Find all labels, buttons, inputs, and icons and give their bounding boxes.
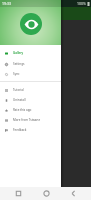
button[interactable]: Tutorial xyxy=(0,85,61,95)
button[interactable]: Uninstall xyxy=(0,95,61,105)
staticText: Rate this app xyxy=(13,108,32,112)
staticText: Uninstall xyxy=(13,98,26,102)
staticText: Sync xyxy=(13,72,20,76)
staticText: Tutorial xyxy=(13,88,24,92)
button[interactable]: More from Tsiwane xyxy=(0,115,61,125)
staticText: Gallery xyxy=(13,51,24,55)
button[interactable]: Gallery xyxy=(0,48,61,58)
staticText: Settings xyxy=(13,62,25,66)
staticText: Feedback xyxy=(13,128,27,132)
button[interactable]: Sync xyxy=(0,69,61,79)
button[interactable]: Home xyxy=(36,187,56,200)
button[interactable]: Settings xyxy=(0,59,61,69)
staticText: 19:33 xyxy=(2,1,11,6)
button[interactable]: Back xyxy=(63,187,83,200)
button[interactable]: Rate this app xyxy=(0,105,61,115)
button[interactable]: Feedback xyxy=(0,125,61,135)
staticText: More from Tsiwane xyxy=(13,118,41,122)
button[interactable]: Recents xyxy=(8,187,28,200)
staticText: 100% xyxy=(77,1,86,6)
